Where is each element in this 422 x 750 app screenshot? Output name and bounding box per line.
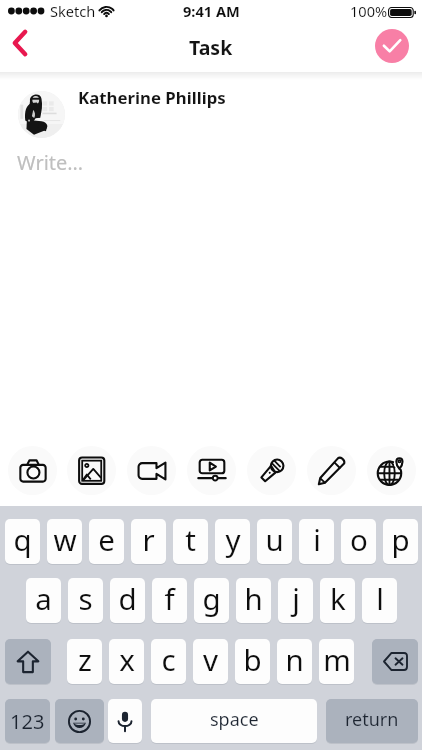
staticText: k (330, 578, 346, 618)
staticText: r (142, 519, 155, 559)
button[interactable]: Video (127, 446, 176, 495)
button[interactable]: j (278, 578, 313, 623)
staticText: u (265, 519, 284, 559)
staticText: q (13, 519, 32, 559)
button[interactable]: r (131, 519, 166, 564)
button[interactable]: l (362, 578, 397, 623)
staticText: o (350, 519, 368, 559)
staticText: t (185, 519, 196, 559)
staticText: e (98, 519, 115, 559)
staticText: n (285, 639, 304, 679)
button[interactable]: Photo library (67, 446, 116, 495)
staticText: l (376, 578, 384, 618)
staticText: g (202, 578, 221, 618)
staticText: 9:41 AM (183, 1, 240, 21)
staticText: w (53, 519, 77, 559)
button[interactable]: w (47, 519, 82, 564)
staticText: f (164, 578, 175, 618)
button[interactable]: n (277, 639, 312, 684)
staticText: a (35, 578, 52, 618)
button[interactable]: Emoji (55, 699, 104, 743)
staticText: Write… (17, 149, 84, 176)
staticText: Task (189, 34, 233, 61)
staticText: m (323, 639, 351, 679)
button[interactable]: Microphone (247, 446, 296, 495)
staticText: y (225, 519, 241, 559)
button[interactable]: b (235, 639, 270, 684)
button[interactable]: Dictation (108, 699, 142, 743)
button[interactable]: Camera (8, 446, 57, 495)
button[interactable]: t (173, 519, 208, 564)
staticText: 123 (10, 708, 45, 735)
staticText: z (78, 639, 92, 679)
button[interactable]: v (193, 639, 228, 684)
button[interactable]: i (299, 519, 334, 564)
staticText: 100% (350, 1, 388, 21)
button[interactable]: Shift (5, 639, 51, 684)
staticText: s (78, 578, 93, 618)
button[interactable]: o (341, 519, 376, 564)
button[interactable]: s (68, 578, 103, 623)
staticText: p (391, 519, 410, 559)
button[interactable]: q (5, 519, 40, 564)
button[interactable]: Location (367, 446, 416, 495)
button[interactable]: return (326, 699, 418, 743)
button[interactable]: h (236, 578, 271, 623)
staticText: Katherine Phillips (78, 86, 226, 109)
button[interactable]: Back (0, 17, 40, 68)
staticText: b (243, 639, 262, 679)
button[interactable]: a (26, 578, 61, 623)
button[interactable]: Video player (187, 446, 236, 495)
button[interactable]: c (151, 639, 186, 684)
button[interactable]: p (383, 519, 418, 564)
button[interactable]: space (151, 699, 317, 743)
button[interactable]: z (67, 639, 102, 684)
button[interactable]: Backspace (372, 639, 418, 684)
button[interactable]: e (89, 519, 124, 564)
staticText: space (210, 707, 259, 732)
button[interactable]: Done (375, 29, 409, 63)
button[interactable]: 123 (5, 699, 50, 743)
staticText: h (244, 578, 263, 618)
staticText: j (292, 578, 300, 618)
staticText: i (313, 519, 321, 559)
button[interactable]: k (320, 578, 355, 623)
staticText: d (118, 578, 137, 618)
button[interactable]: m (319, 639, 354, 684)
button[interactable]: x (109, 639, 144, 684)
staticText: c (161, 639, 176, 679)
button[interactable]: g (194, 578, 229, 623)
staticText: return (345, 707, 399, 732)
staticText: x (119, 639, 135, 679)
button[interactable]: y (215, 519, 250, 564)
button[interactable]: u (257, 519, 292, 564)
staticText: v (203, 639, 218, 679)
button[interactable]: d (110, 578, 145, 623)
staticText: Sketch (50, 1, 96, 21)
button[interactable]: Draw (307, 446, 356, 495)
button[interactable]: f (152, 578, 187, 623)
